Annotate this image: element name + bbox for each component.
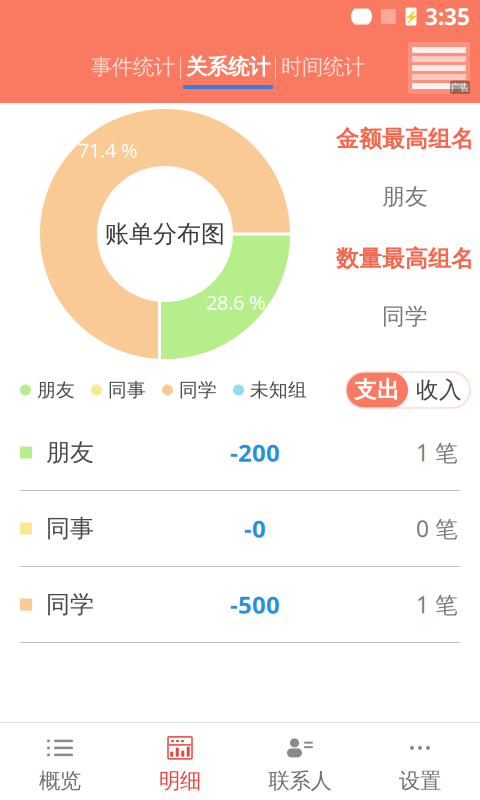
staticText: 0 笔 bbox=[416, 513, 458, 543]
button[interactable]: 明细 bbox=[120, 723, 240, 800]
button[interactable]: 支出 bbox=[346, 372, 408, 408]
button[interactable]: 朋友 bbox=[0, 415, 480, 490]
staticText: 概览 bbox=[39, 768, 81, 794]
staticText: 关系统计 bbox=[186, 54, 270, 80]
staticText: 广告 bbox=[451, 81, 469, 93]
staticText: ⚡ bbox=[403, 10, 418, 23]
staticText: 支出 bbox=[354, 376, 400, 404]
staticText: 朋友 bbox=[382, 183, 428, 211]
staticText: 事件统计 bbox=[91, 54, 175, 80]
staticText: 71.4 % bbox=[78, 137, 138, 163]
button[interactable]: 同学 bbox=[0, 567, 480, 642]
staticText: 朋友 bbox=[37, 378, 75, 401]
button[interactable]: 关系统计 bbox=[181, 33, 275, 103]
staticText: 金额最高组名 bbox=[336, 125, 474, 153]
button[interactable]: 时间统计 bbox=[276, 33, 370, 103]
staticText: 1 笔 bbox=[416, 589, 458, 619]
staticText: 账单分布图 bbox=[105, 219, 225, 249]
staticText: 28.6 % bbox=[206, 289, 266, 315]
staticText: 同事 bbox=[108, 378, 146, 401]
staticText: 同学 bbox=[382, 302, 428, 330]
staticText: 未知组 bbox=[250, 378, 307, 401]
staticText: 收入 bbox=[416, 376, 462, 404]
staticText: -500 bbox=[230, 589, 280, 620]
staticText: 3:35 bbox=[425, 1, 470, 31]
staticText: -0 bbox=[244, 513, 266, 544]
button[interactable]: 设置 bbox=[360, 723, 480, 800]
button[interactable]: 事件统计 bbox=[86, 33, 180, 103]
staticText: 设置 bbox=[399, 768, 441, 794]
staticText: 朋友 bbox=[46, 438, 94, 467]
button[interactable]: 联系人 bbox=[240, 723, 360, 800]
staticText: 时间统计 bbox=[281, 54, 365, 80]
button[interactable]: 同事 bbox=[0, 491, 480, 566]
staticText: 明细 bbox=[159, 768, 201, 794]
staticText: 同事 bbox=[46, 514, 94, 543]
button[interactable]: 概览 bbox=[0, 723, 120, 800]
button[interactable]: 收入 bbox=[408, 372, 470, 408]
staticText: 1 笔 bbox=[416, 437, 458, 467]
staticText: 数量最高组名 bbox=[336, 245, 474, 272]
staticText: -200 bbox=[230, 437, 280, 468]
staticText: 同学 bbox=[179, 378, 217, 401]
staticText: 同学 bbox=[46, 590, 94, 619]
staticText: 联系人 bbox=[268, 768, 331, 794]
button[interactable]: 广告 bbox=[408, 42, 470, 94]
